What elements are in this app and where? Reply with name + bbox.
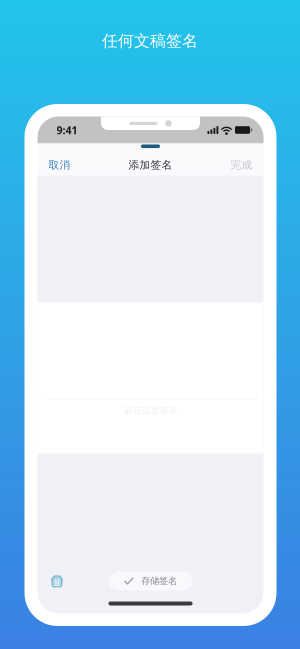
button[interactable]: Clear signature [45,569,68,593]
staticText: 请在这里签名 [123,404,177,416]
staticText: 完成 [230,158,252,171]
staticText: 9:41 [56,123,77,137]
button[interactable]: 存储签名 [109,571,192,590]
button[interactable]: 取消 [42,153,76,176]
staticText: 取消 [48,158,70,171]
staticText: 任何文稿签名 [102,31,198,51]
staticText: 添加签名 [128,158,172,171]
button[interactable]: 完成 [224,153,258,176]
staticText: 存储签名 [141,575,177,587]
